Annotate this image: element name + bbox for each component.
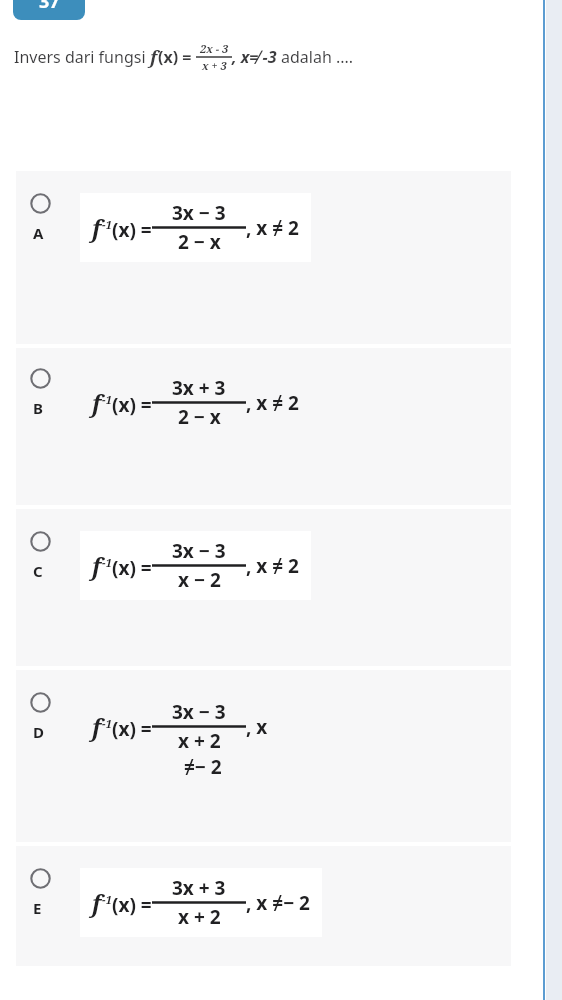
staticText: f [92,387,102,418]
staticText: f [92,212,102,243]
staticText: 37 [39,0,60,9]
staticText: −1 [102,217,112,233]
staticText: x − 2 [178,567,221,593]
staticText: ≠− 2 [184,754,222,780]
staticText: 3x − 3 [172,538,226,564]
staticText: E [33,898,42,918]
staticText: f [92,711,102,742]
staticText: f [92,550,102,581]
staticText: C [33,561,43,581]
staticText: x + 3 [202,58,227,73]
button[interactable]: Question number 37 [13,0,85,20]
staticText: f [92,887,102,918]
staticText: (x) = [158,46,196,68]
staticText: 2x − 3 [200,41,229,56]
button[interactable]: C [16,509,511,666]
staticText: (x) = [112,217,152,243]
staticText: x + 2 [178,728,221,754]
staticText: x + 2 [178,904,221,930]
staticText: adalah .... [281,46,354,68]
button[interactable]: A [16,171,511,344]
button[interactable]: E [16,846,511,966]
staticText: (x) = [112,392,152,418]
staticText: , x ≠ 2 [246,390,299,416]
staticText: 3x − 3 [172,699,226,725]
button[interactable]: B [16,348,511,505]
staticText: , x≠ −3 [232,46,281,68]
staticText: −1 [102,892,112,908]
staticText: −1 [102,555,112,571]
staticText: , x ≠ 2 [246,553,299,579]
staticText: 3x + 3 [172,875,226,901]
staticText: Invers dari fungsi [14,46,150,68]
staticText: , x [246,714,268,740]
staticText: 2 − x [178,229,221,255]
staticText: 2 − x [178,404,221,430]
staticText: B [33,398,43,418]
staticText: 3x + 3 [172,375,226,401]
staticText: f [150,45,158,70]
staticText: (x) = [112,555,152,581]
button[interactable]: D [16,670,511,842]
staticText: (x) = [112,892,152,918]
staticText: −1 [102,392,112,408]
staticText: A [33,223,44,243]
staticText: , x ≠− 2 [246,890,310,916]
staticText: 3x − 3 [172,200,226,226]
staticText: D [33,722,44,742]
staticText: , x ≠ 2 [246,215,299,241]
staticText: (x) = [112,716,152,742]
staticText: −1 [102,716,112,732]
